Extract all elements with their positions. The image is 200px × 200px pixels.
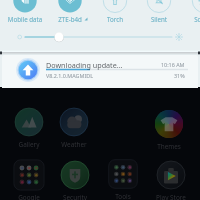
button[interactable]: Downloading update... [2, 55, 198, 88]
staticText: Screen [176, 15, 200, 23]
staticText: ZTE-b4d [42, 15, 98, 23]
button[interactable]: Weather [51, 106, 97, 152]
button[interactable]: Mobile data [3, 0, 47, 23]
staticText: Tools [100, 192, 146, 200]
button[interactable]: Gallery [6, 106, 52, 152]
button[interactable]: Tools [100, 158, 146, 200]
staticText: Downloading update... [46, 60, 123, 70]
button[interactable]: Play Store [148, 159, 194, 200]
button[interactable]: Google [6, 159, 52, 200]
staticText: 31% [174, 72, 185, 79]
staticText: Security [52, 193, 98, 200]
staticText: Gallery [6, 140, 52, 149]
staticText: V8.2.1.0.MAGMIDL [46, 72, 93, 79]
staticText: Google [6, 193, 52, 200]
button[interactable]: Themes [146, 108, 192, 154]
button[interactable]: Silent [137, 0, 181, 23]
button[interactable]: Security [52, 159, 98, 200]
staticText: Weather [51, 140, 97, 149]
staticText: 10:16 AM [161, 61, 185, 68]
button[interactable]: Screen [182, 0, 200, 23]
staticText: Mobile data [0, 15, 53, 23]
staticText: Play Store [148, 193, 194, 200]
button[interactable]: ZTE-b4d [48, 0, 92, 23]
staticText: Torch [87, 15, 143, 23]
button[interactable]: Torch [93, 0, 137, 23]
staticText: Themes [146, 142, 192, 151]
staticText: Silent [131, 15, 187, 23]
